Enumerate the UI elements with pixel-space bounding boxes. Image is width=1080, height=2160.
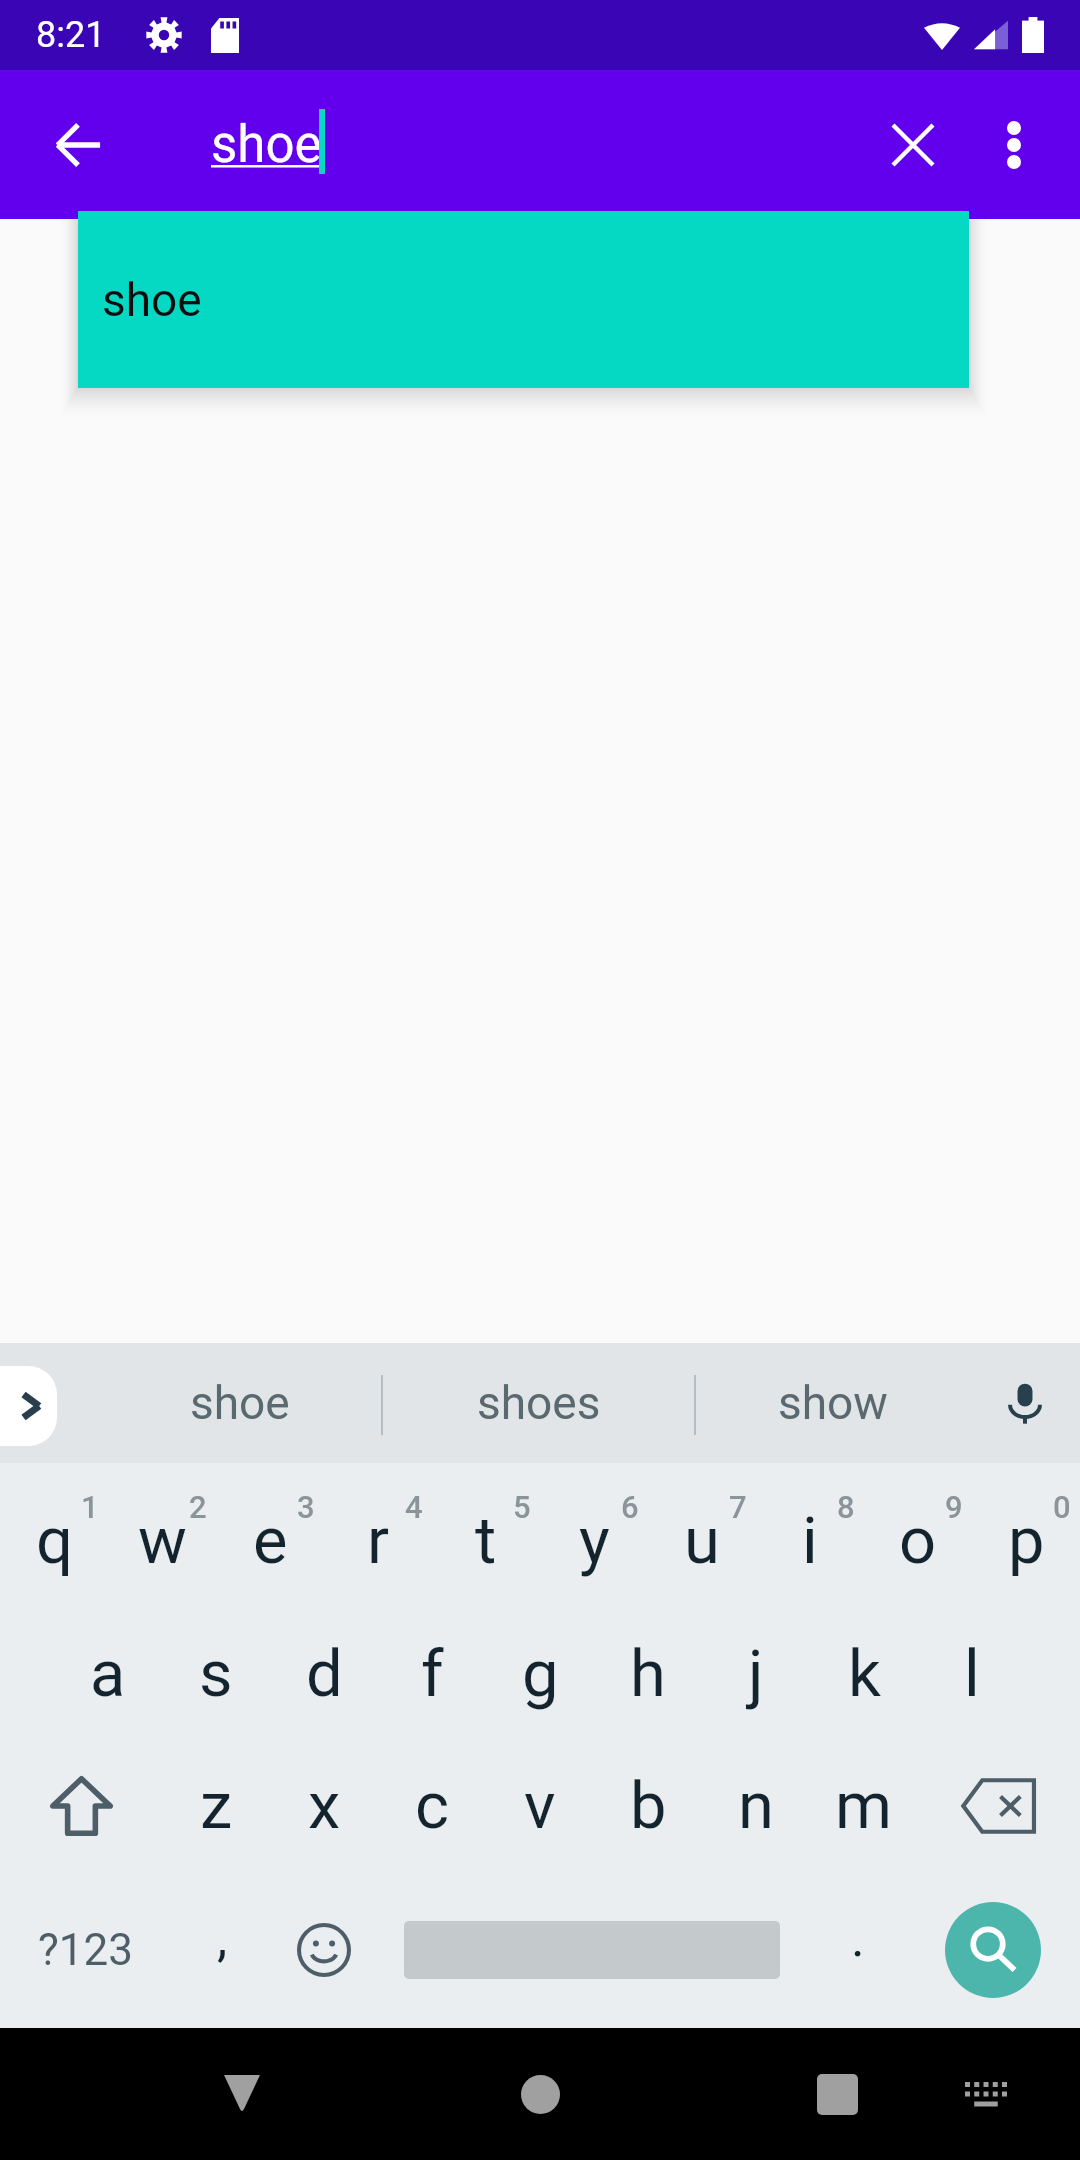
staticText: s [199, 1636, 233, 1712]
staticText: 2 [189, 1489, 207, 1525]
staticText: shoe [102, 273, 202, 327]
staticText: b [630, 1768, 667, 1844]
button[interactable]: Search [906, 1884, 1080, 2016]
staticText: m [835, 1768, 893, 1844]
button[interactable]: b [594, 1740, 702, 1872]
staticText: 7 [729, 1489, 747, 1525]
staticText: d [306, 1636, 343, 1712]
button[interactable]: Home [450, 2028, 630, 2160]
staticText: . [851, 1908, 865, 1969]
staticText: 3 [297, 1489, 315, 1525]
button[interactable]: u [648, 1475, 756, 1607]
button[interactable]: Recent apps [747, 2028, 927, 2160]
button[interactable]: More options [966, 97, 1062, 193]
button[interactable]: i [756, 1475, 864, 1607]
button[interactable]: Back [152, 2028, 332, 2160]
button[interactable]: shoe [99, 1343, 381, 1463]
button[interactable]: Backspace [918, 1740, 1080, 1872]
button[interactable]: p [972, 1475, 1080, 1607]
button[interactable]: y [540, 1475, 648, 1607]
staticText: p [1008, 1503, 1045, 1579]
button[interactable]: w [108, 1475, 216, 1607]
staticText: shoe [190, 1376, 290, 1430]
button[interactable]: v [486, 1740, 594, 1872]
button[interactable]: shoe [78, 211, 969, 388]
staticText: 9 [945, 1489, 963, 1525]
button[interactable]: z [162, 1740, 270, 1872]
staticText: w [138, 1503, 187, 1579]
button[interactable]: h [594, 1608, 702, 1740]
button[interactable]: k [810, 1608, 918, 1740]
staticText: 5 [513, 1489, 531, 1525]
button[interactable]: shoes [383, 1343, 694, 1463]
button[interactable]: f [378, 1608, 486, 1740]
button[interactable]: l [918, 1608, 1026, 1740]
staticText: 4 [405, 1489, 423, 1525]
button[interactable]: e [216, 1475, 324, 1607]
staticText: j [748, 1636, 764, 1712]
button[interactable]: c [378, 1740, 486, 1872]
staticText: 6 [621, 1489, 639, 1525]
button[interactable]: j [702, 1608, 810, 1740]
button[interactable]: ?123 [0, 1884, 170, 2016]
staticText: o [899, 1503, 937, 1579]
button[interactable]: Emoji [274, 1884, 374, 2016]
button[interactable] [374, 1884, 810, 2016]
button[interactable]: , [170, 1884, 274, 2016]
button[interactable]: x [270, 1740, 378, 1872]
button[interactable]: d [270, 1608, 378, 1740]
staticText: k [848, 1636, 881, 1712]
staticText: ?123 [38, 1924, 133, 1976]
staticText: 0 [1053, 1489, 1071, 1525]
button[interactable]: Voice input [970, 1343, 1080, 1463]
button[interactable]: Switch keyboard [916, 2028, 1056, 2160]
staticText: t [475, 1503, 497, 1579]
button[interactable]: Clear search [865, 97, 961, 193]
button[interactable]: Expand toolbar [0, 1366, 57, 1446]
button[interactable]: Shift [0, 1740, 162, 1872]
staticText: r [367, 1503, 390, 1579]
staticText: c [415, 1768, 450, 1844]
staticText: , [217, 1908, 228, 1969]
staticText: g [522, 1636, 559, 1712]
button[interactable]: m [810, 1740, 918, 1872]
staticText: q [36, 1503, 73, 1579]
button[interactable]: Back [30, 97, 126, 193]
button[interactable]: o [864, 1475, 972, 1607]
staticText: h [630, 1636, 666, 1712]
button[interactable]: g [486, 1608, 594, 1740]
staticText: x [308, 1768, 341, 1844]
staticText: u [684, 1503, 720, 1579]
staticText: shoes [477, 1376, 601, 1430]
staticText: l [964, 1636, 980, 1712]
staticText: shoe [211, 115, 322, 175]
button[interactable]: q [0, 1475, 108, 1607]
staticText: n [738, 1768, 774, 1844]
button[interactable]: show [696, 1343, 970, 1463]
button[interactable]: r [324, 1475, 432, 1607]
staticText: 8 [837, 1489, 855, 1525]
staticText: 1 [81, 1489, 99, 1525]
staticText: a [90, 1636, 126, 1712]
button[interactable]: n [702, 1740, 810, 1872]
staticText: z [200, 1768, 233, 1844]
staticText: 8:21 [36, 14, 106, 56]
staticText: show [778, 1376, 888, 1430]
staticText: y [579, 1503, 610, 1579]
button[interactable]: a [54, 1608, 162, 1740]
staticText: v [524, 1768, 556, 1844]
staticText: i [802, 1503, 818, 1579]
staticText: e [253, 1503, 288, 1579]
staticText: f [421, 1636, 444, 1712]
button[interactable]: t [432, 1475, 540, 1607]
button[interactable]: . [810, 1884, 906, 2016]
button[interactable]: s [162, 1608, 270, 1740]
